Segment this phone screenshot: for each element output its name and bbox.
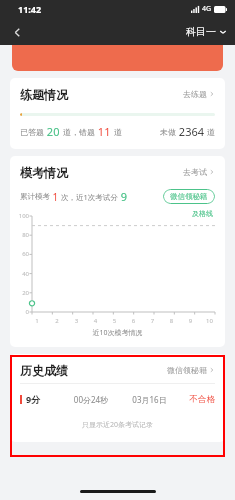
staticText: 6 (124, 317, 143, 325)
staticText: 累计模考 (20, 192, 50, 201)
staticText: 4G (202, 4, 212, 14)
staticText: 80 (12, 231, 29, 239)
staticText: 不合格 (179, 394, 215, 405)
staticText: 40 (12, 270, 29, 278)
button[interactable]: 去考试 (183, 167, 215, 177)
staticText: 练题情况 (20, 87, 68, 102)
staticText: 11:42 (18, 3, 42, 15)
staticText: 10 (200, 317, 219, 325)
staticText: 2 (47, 317, 67, 325)
staticText: 道，错题 (63, 127, 95, 137)
button[interactable]: 去练题 (183, 89, 215, 99)
button[interactable]: 微信领秘籍 (167, 365, 215, 375)
staticText: 3 (67, 317, 86, 325)
staticText: 5 (105, 317, 124, 325)
staticText: 未做 (160, 127, 176, 137)
staticText: 已答题 (20, 127, 44, 137)
staticText: 1 (50, 190, 61, 204)
staticText: 及格线 (192, 209, 213, 218)
button[interactable]: 微信领秘籍 (163, 189, 215, 204)
staticText: 7 (143, 317, 162, 325)
staticText: 近10次模考情况 (10, 328, 225, 338)
button[interactable]: 科目一 (186, 25, 227, 38)
staticText: 20 (44, 124, 63, 139)
staticText: 道 (114, 127, 122, 137)
staticText: 20 (12, 289, 29, 297)
staticText: 模考情况 (20, 165, 68, 180)
staticText: 去练题 (183, 89, 207, 99)
staticText: 00分24秒 (62, 394, 120, 405)
staticText: 科目一 (186, 25, 216, 38)
staticText: 8 (162, 317, 181, 325)
staticText: 道 (207, 127, 215, 137)
staticText: 只显示近20条考试记录 (10, 420, 225, 430)
button[interactable] (12, 45, 223, 71)
staticText: 去考试 (183, 167, 207, 177)
staticText: 0 (12, 308, 29, 316)
staticText: 60 (12, 250, 29, 258)
staticText: 历史成绩 (20, 363, 68, 378)
button[interactable]: Back (6, 21, 28, 43)
staticText: 2364 (176, 124, 207, 139)
button[interactable]: 9分 (20, 384, 215, 414)
staticText: 03月16日 (120, 394, 179, 405)
staticText: 9 (118, 189, 128, 204)
staticText: 11 (95, 124, 114, 139)
staticText: 100 (12, 212, 29, 220)
staticText: 9 (181, 317, 200, 325)
staticText: 微信领秘籍 (167, 365, 207, 375)
staticText: 9分 (26, 393, 62, 405)
staticText: 4 (86, 317, 105, 325)
staticText: 次，近1次考试分 (61, 192, 118, 202)
staticText: 1 (27, 317, 47, 325)
staticText: 微信领秘籍 (170, 192, 208, 201)
